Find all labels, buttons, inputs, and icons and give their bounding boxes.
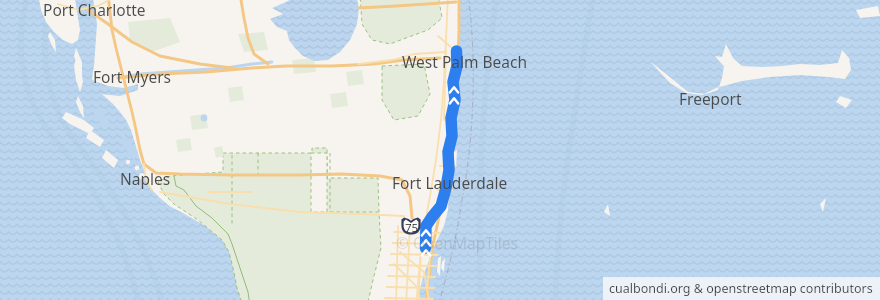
staticText: cualbondi.org & openstreetmap contributo… [609, 280, 873, 297]
staticText: © OpenMapTiles [396, 232, 518, 253]
staticText: West Palm Beach [402, 51, 528, 72]
staticText: Freeport [679, 88, 742, 109]
staticText: 75 [405, 220, 419, 236]
staticText: Port Charlotte [43, 0, 146, 20]
staticText: Fort Lauderdale [392, 172, 508, 193]
button[interactable]: cualbondi.org & openstreetmap contributo… [603, 277, 880, 300]
staticText: Naples [120, 168, 171, 189]
staticText: Fort Myers [93, 66, 171, 87]
button[interactable]: Map of route from Fort Lauderdale to Wes… [0, 0, 880, 300]
